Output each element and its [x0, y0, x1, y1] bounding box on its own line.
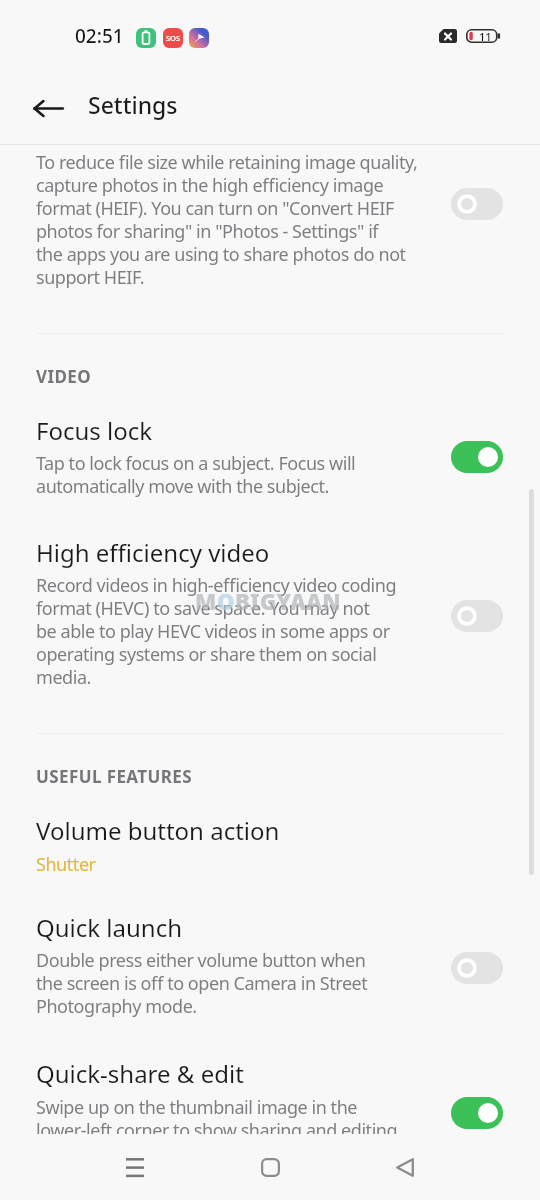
staticText: High efficiency video	[36, 536, 270, 569]
button[interactable]: Back	[375, 1137, 435, 1197]
button[interactable]: Turn off	[451, 1097, 503, 1129]
button[interactable]: Focus lock	[0, 414, 540, 498]
staticText: Double press either volume button when t…	[36, 948, 368, 1018]
button[interactable]: High efficiency video	[0, 536, 540, 689]
button[interactable]: To reduce file size while retaining imag…	[0, 150, 540, 289]
staticText: 11	[479, 29, 492, 43]
button[interactable]: Turn on	[451, 952, 503, 984]
staticText: BIGYAAN	[235, 586, 341, 616]
staticText: Volume button action	[36, 814, 280, 847]
staticText: SOS	[166, 33, 181, 43]
staticText: Quick launch	[36, 911, 183, 944]
staticText: Settings	[88, 89, 178, 120]
button[interactable]: Turn on	[451, 188, 503, 220]
staticText: Record videos in high-efficiency video c…	[36, 573, 397, 689]
staticText: To reduce file size while retaining imag…	[36, 150, 418, 289]
staticText: O	[217, 586, 235, 616]
staticText: Swipe up on the thumbnail image in the l…	[36, 1095, 398, 1134]
button[interactable]: Volume button action	[0, 814, 540, 877]
button[interactable]: Quick launch	[0, 911, 540, 1018]
button[interactable]: Turn on	[451, 600, 503, 632]
staticText: USEFUL FEATURES	[36, 765, 192, 788]
button[interactable]: Quick-share & edit	[0, 1057, 540, 1134]
button[interactable]: Recent apps	[105, 1137, 165, 1197]
button[interactable]: Turn off	[451, 441, 503, 473]
staticText: Tap to lock focus on a subject. Focus wi…	[36, 451, 356, 498]
staticText: Focus lock	[36, 414, 153, 447]
staticText: 02:51	[75, 23, 124, 49]
staticText: VIDEO	[36, 365, 92, 388]
button[interactable]: Back	[24, 84, 72, 132]
staticText: Quick-share & edit	[36, 1057, 244, 1090]
staticText: M	[195, 586, 217, 616]
button[interactable]: Home	[240, 1137, 300, 1197]
staticText: Shutter	[36, 852, 96, 877]
